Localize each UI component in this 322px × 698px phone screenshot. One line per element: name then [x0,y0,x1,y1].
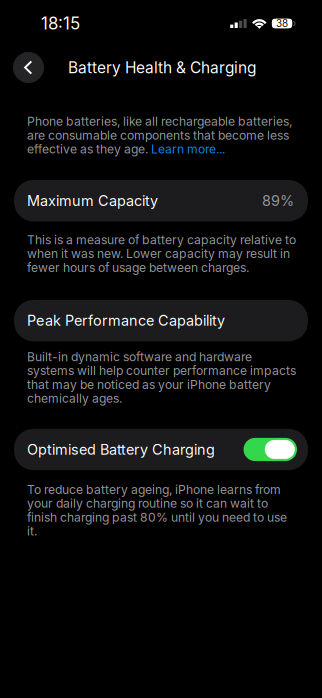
staticText: Battery Health & Charging [68,58,256,77]
staticText: when it was new. Lower capacity may resu… [27,246,290,261]
staticText: Maximum Capacity [27,192,158,209]
button[interactable]: Maximum Capacity [0,180,322,221]
staticText: your daily charging routine so it can wa… [27,496,268,511]
staticText: 18:15 [41,13,80,34]
button[interactable]: Learn more... [151,142,225,156]
staticText: To reduce battery ageing, iPhone learns … [27,482,281,497]
button[interactable]: Back [13,52,44,83]
staticText: fewer hours of usage between charges. [27,260,249,275]
staticText: Optimised Battery Charging [27,441,215,458]
staticText: Learn more... [151,142,225,156]
staticText: effective as they age. [27,142,151,156]
staticText: that may be noticed as your iPhone batte… [27,377,271,392]
staticText: Phone batteries, like all rechargeable b… [27,114,292,129]
staticText: This is a measure of battery capacity re… [27,232,296,247]
staticText: 89% [262,192,294,209]
staticText: systems will help counter performance im… [27,363,296,378]
staticText: chemically ages. [27,391,122,406]
button[interactable]: Peak Performance Capability [0,300,322,341]
staticText: are consumable components that become le… [27,128,289,143]
staticText: it. [27,524,37,538]
button[interactable]: Optimised Battery Charging [0,429,322,470]
staticText: 38 [276,17,288,29]
staticText: finish charging past 80% until you need … [27,510,287,525]
staticText: Built-in dynamic software and hardware [27,349,252,364]
staticText: Peak Performance Capability [27,312,225,329]
